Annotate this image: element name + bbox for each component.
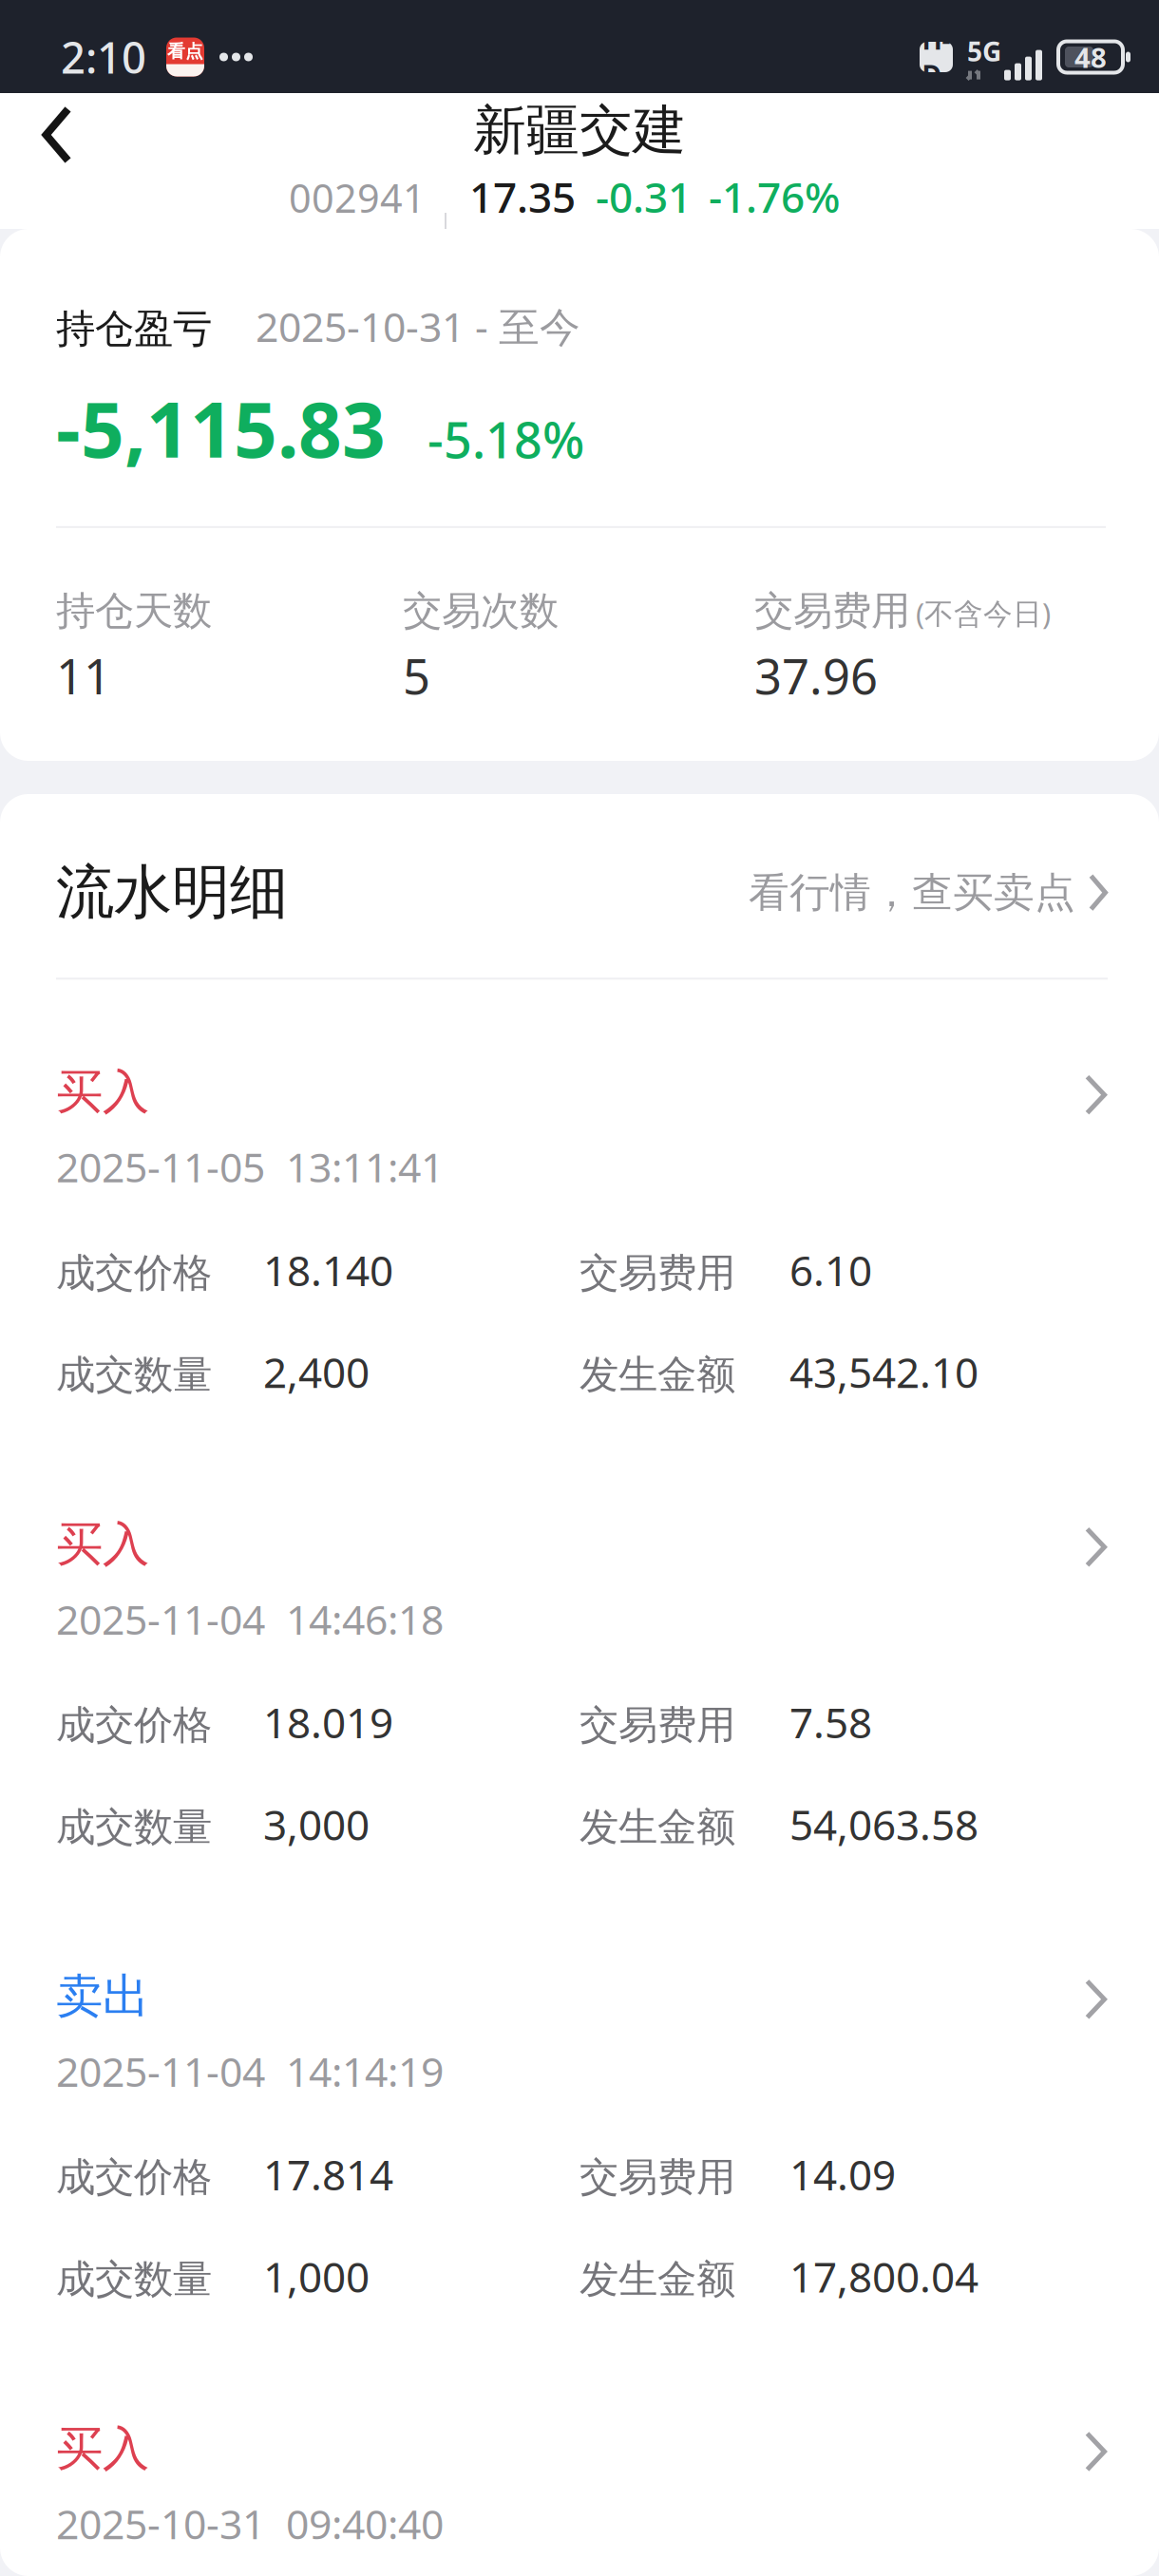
- staticText: 买入: [56, 2420, 149, 2478]
- staticText: 2025-10-31 - 至今: [256, 299, 580, 353]
- staticText: 交易费用: [579, 1249, 735, 1297]
- staticText: 交易费用: [754, 587, 910, 635]
- staticText: 买入: [56, 1063, 149, 1121]
- staticText: 交易费用: [579, 2153, 735, 2202]
- staticText: 18.140: [263, 1242, 393, 1297]
- staticText: 发生金额: [579, 2255, 735, 2304]
- staticText: 新疆交建: [473, 98, 686, 163]
- button[interactable]: 买入: [0, 2420, 1159, 2576]
- button[interactable]: Back: [0, 79, 114, 191]
- staticText: 5G: [967, 34, 1001, 69]
- staticText: 17.35: [469, 169, 576, 224]
- staticText: 48: [1074, 38, 1107, 76]
- staticText: -5,115.83: [56, 378, 386, 479]
- staticText: 2025-11-04 14:14:19: [56, 2044, 444, 2098]
- staticText: 2:10: [61, 28, 146, 86]
- staticText: 成交数量: [56, 1803, 212, 1851]
- staticText: 持仓天数: [56, 587, 212, 635]
- staticText: -5.18%: [427, 406, 584, 472]
- staticText: 14.09: [789, 2146, 896, 2202]
- staticText: 交易次数: [403, 587, 559, 635]
- staticText: 成交价格: [56, 2153, 212, 2202]
- staticText: -1.76%: [709, 169, 840, 224]
- button[interactable]: 卖出: [0, 1968, 1159, 2304]
- staticText: 卖出: [56, 1968, 149, 2025]
- staticText: 2,400: [263, 1344, 370, 1400]
- staticText: 18.019: [263, 1694, 393, 1750]
- staticText: 发生金额: [579, 1803, 735, 1851]
- staticText: 7.58: [789, 1694, 872, 1750]
- staticText: 看行情，查买卖点: [749, 868, 1075, 917]
- staticText: 2025-11-04 14:46:18: [56, 1592, 444, 1646]
- staticText: 买入: [56, 1515, 149, 1573]
- staticText: 2025-11-05 13:11:41: [56, 1140, 444, 1194]
- staticText: 37.96: [754, 644, 878, 708]
- staticText: HD: [922, 22, 950, 92]
- staticText: 43,542.10: [789, 1344, 978, 1400]
- staticText: 成交价格: [56, 1701, 212, 1749]
- staticText: 成交价格: [56, 1249, 212, 1297]
- button[interactable]: 看行情，查买卖点: [749, 868, 1108, 917]
- staticText: 002941: [289, 172, 426, 224]
- staticText: 17.814: [263, 2146, 393, 2202]
- staticText: -0.31: [596, 169, 692, 224]
- staticText: 54,063.58: [789, 1796, 978, 1852]
- staticText: 5: [403, 644, 430, 708]
- staticText: 成交数量: [56, 2255, 212, 2304]
- button[interactable]: 买入: [0, 1515, 1159, 1852]
- staticText: 2025-10-31 09:40:40: [56, 2496, 444, 2550]
- staticText: 3,000: [263, 1796, 370, 1852]
- staticText: 发生金额: [579, 1351, 735, 1399]
- staticText: 持仓盈亏: [56, 305, 212, 353]
- staticText: 看点: [167, 40, 203, 62]
- staticText: 6.10: [789, 1242, 872, 1297]
- staticText: 17,800.04: [789, 2248, 978, 2304]
- staticText: 1,000: [263, 2248, 370, 2304]
- staticText: 成交数量: [56, 1351, 212, 1399]
- staticText: 交易费用: [579, 1701, 735, 1749]
- staticText: 11: [56, 644, 111, 708]
- staticText: (不含今日): [916, 594, 1051, 632]
- button[interactable]: 买入: [0, 1063, 1159, 1400]
- staticText: 流水明细: [56, 857, 288, 928]
